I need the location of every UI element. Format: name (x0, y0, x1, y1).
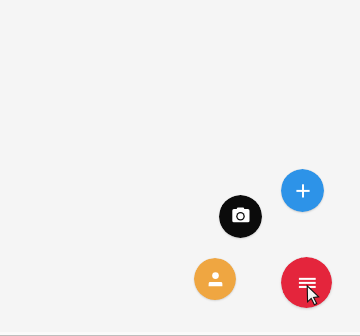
button[interactable]: Profile (194, 258, 236, 300)
button[interactable]: Camera (219, 195, 262, 238)
button[interactable]: Menu (281, 257, 332, 308)
button[interactable]: Add (281, 169, 324, 212)
